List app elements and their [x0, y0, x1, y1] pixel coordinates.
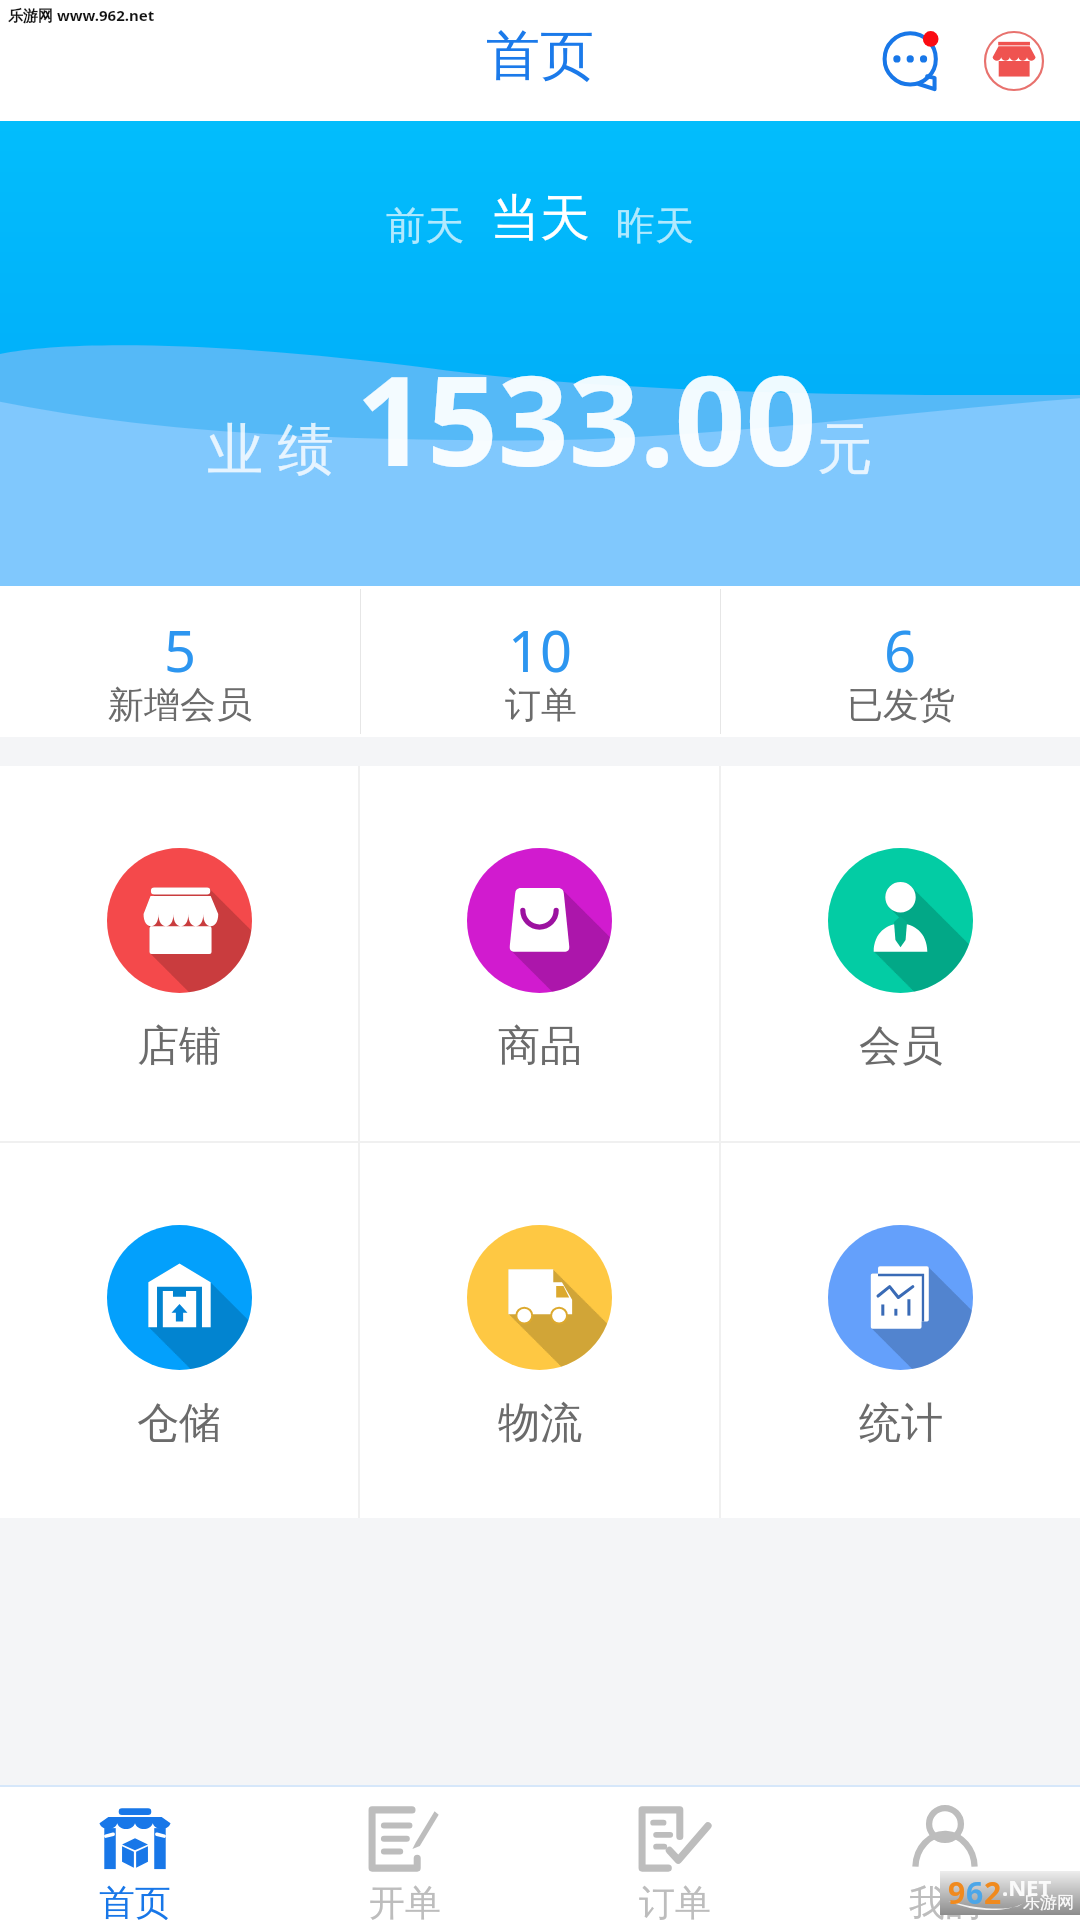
- button[interactable]: 仓储: [0, 1143, 358, 1518]
- staticText: .NET: [1002, 1872, 1052, 1902]
- staticText: 物流: [498, 1397, 582, 1450]
- button[interactable]: 首页: [0, 1787, 270, 1920]
- staticText: 已发货: [847, 682, 955, 727]
- staticText: 前天: [386, 201, 464, 250]
- staticText: 1533.00: [356, 333, 817, 502]
- staticText: 仓储: [137, 1397, 221, 1450]
- button[interactable]: 会员: [721, 766, 1080, 1141]
- button[interactable]: 当天: [477, 181, 603, 256]
- button[interactable]: 开单: [270, 1787, 540, 1920]
- button[interactable]: Shop: [972, 19, 1056, 103]
- staticText: 开单: [369, 1880, 441, 1920]
- button[interactable]: 物流: [360, 1143, 719, 1518]
- button[interactable]: 6: [721, 586, 1080, 737]
- staticText: 6: [884, 612, 917, 688]
- staticText: 会员: [859, 1020, 943, 1073]
- staticText: 乐游网: [1023, 1892, 1074, 1913]
- staticText: 当天: [490, 187, 590, 250]
- staticText: 9: [948, 1872, 966, 1913]
- staticText: 元: [817, 414, 873, 485]
- staticText: 订单: [639, 1880, 711, 1920]
- staticText: 业 绩: [207, 409, 334, 485]
- staticText: 店铺: [137, 1020, 221, 1073]
- staticText: 统计: [859, 1397, 943, 1450]
- button[interactable]: 统计: [721, 1143, 1080, 1518]
- staticText: 首页: [99, 1880, 171, 1920]
- staticText: 订单: [505, 682, 577, 727]
- button[interactable]: 店铺: [0, 766, 358, 1141]
- button[interactable]: 5: [0, 586, 360, 737]
- staticText: 6: [966, 1872, 984, 1913]
- button[interactable]: 订单: [540, 1787, 810, 1920]
- staticText: 5: [164, 612, 197, 688]
- staticText: 新增会员: [108, 682, 252, 727]
- button[interactable]: 昨天: [603, 195, 707, 256]
- staticText: 商品: [498, 1020, 582, 1073]
- button[interactable]: 前天: [373, 195, 477, 256]
- staticText: 2: [984, 1872, 1002, 1913]
- staticText: 乐游网 www.962.net: [8, 5, 155, 25]
- button[interactable]: 我的: [810, 1787, 1080, 1920]
- staticText: 首页: [486, 22, 594, 90]
- staticText: 10: [508, 612, 573, 688]
- button[interactable]: 商品: [360, 766, 719, 1141]
- staticText: 昨天: [616, 201, 694, 250]
- button[interactable]: Messages: [872, 19, 956, 103]
- button[interactable]: 10: [361, 586, 720, 737]
- staticText: 我的: [909, 1880, 981, 1920]
